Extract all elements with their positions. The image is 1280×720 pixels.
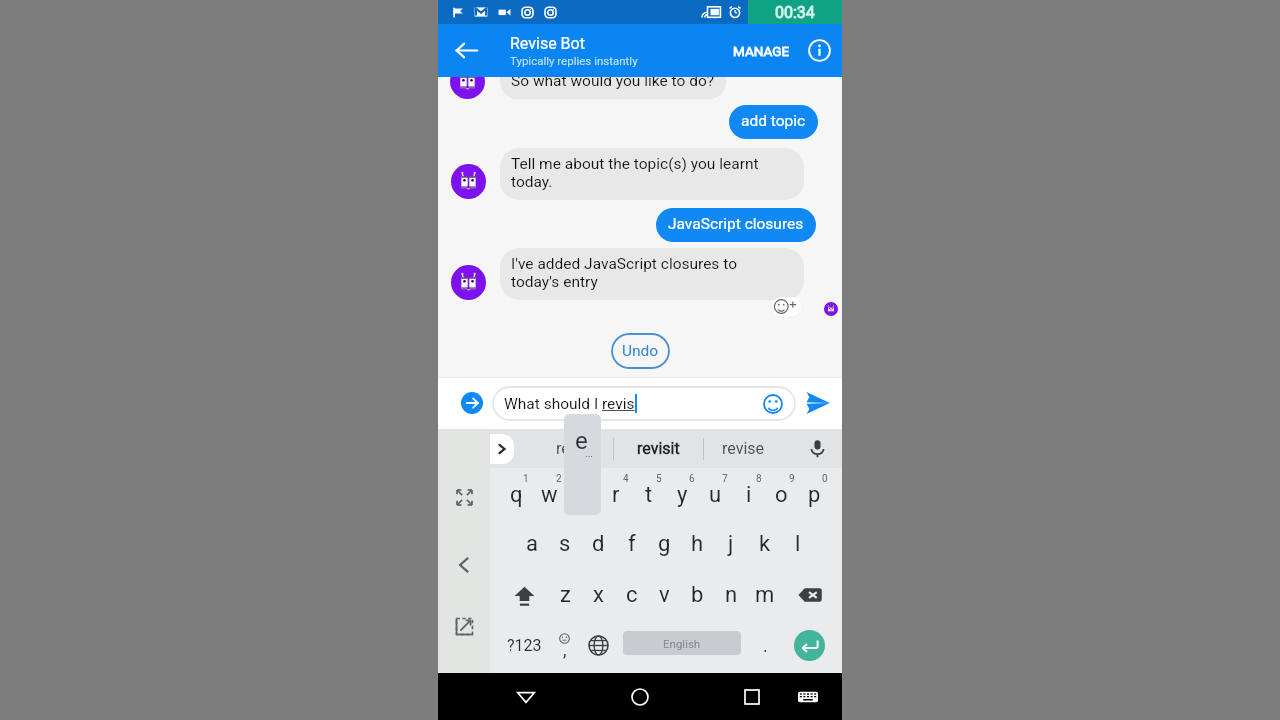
button[interactable]: Open in new window [449,611,479,641]
staticText: s [559,531,571,557]
button[interactable]: i [732,470,765,520]
button[interactable]: revise [707,429,779,468]
button[interactable]: re [527,429,599,468]
button[interactable]: w [533,470,566,520]
button[interactable]: English [623,631,741,655]
button[interactable]: t [632,470,665,520]
staticText: 1 [523,473,529,485]
button[interactable]: More suggestions [490,434,514,464]
staticText: 7 [722,473,728,485]
staticText: n [725,582,738,608]
button[interactable]: Change language [582,620,615,670]
staticText: re [556,439,570,458]
button[interactable]: y [666,470,699,520]
button[interactable]: s [548,519,581,569]
staticText: v [659,582,670,608]
staticText: 6 [689,473,695,485]
button[interactable]: l [781,519,814,569]
staticText: q [510,482,523,508]
button[interactable]: q [500,470,533,520]
button[interactable]: Back [504,675,548,719]
button[interactable]: Expand keyboard [449,482,479,512]
button[interactable]: g [648,519,681,569]
button[interactable]: JavaScript closures [656,208,816,242]
button[interactable]: z [549,570,582,620]
staticText: Tell me about the topic(s) you learnt to… [511,155,759,191]
button[interactable]: Open actions [457,388,487,418]
button[interactable]: Shift [501,570,547,620]
staticText: English [663,637,701,650]
staticText: ... [585,448,593,460]
button[interactable]: Undo [611,333,670,369]
staticText: u [709,482,722,508]
staticText: j [728,531,734,557]
button[interactable]: k [748,519,781,569]
button[interactable]: Switch keyboard [786,675,830,719]
button[interactable]: b [681,570,714,620]
staticText: Typically replies instantly [510,54,638,67]
button[interactable]: Key preview e [564,414,601,515]
staticText: y [677,482,688,508]
button[interactable]: e [566,470,599,520]
staticText: 0 [822,473,828,485]
staticText: h [691,531,704,557]
staticText: revise [722,439,765,458]
button[interactable]: x [582,570,615,620]
button[interactable]: add topic [729,105,818,139]
staticText: 00:34 [775,3,815,22]
button[interactable]: Backspace [787,570,833,620]
staticText: l [795,531,801,557]
staticText: e [575,427,588,455]
staticText: g [658,531,671,557]
staticText: JavaScript closures [668,215,804,233]
button[interactable]: What should I [492,386,796,421]
button[interactable]: Add reaction [772,297,801,316]
button[interactable]: Back [438,24,494,77]
button[interactable]: MANAGE [727,24,796,77]
button[interactable]: Tell me about the topic(s) you learnt to… [500,148,804,200]
button[interactable]: . [750,620,780,670]
button[interactable]: o [765,470,798,520]
button[interactable]: a [515,519,548,569]
button[interactable]: Previous [449,550,479,580]
button[interactable]: Recent apps [730,675,774,719]
staticText: add topic [741,112,806,130]
button[interactable]: ?123 [501,620,547,670]
staticText: d [592,531,605,557]
button[interactable]: Emoji [548,620,581,670]
button[interactable]: Conversation info [796,24,842,77]
button[interactable]: f [615,519,648,569]
staticText: z [560,582,571,608]
button[interactable]: d [582,519,615,569]
button[interactable]: revisit [622,429,694,468]
staticText: a [526,531,538,557]
button[interactable]: Revise Bot [510,24,743,77]
button[interactable]: r [599,470,632,520]
button[interactable]: n [715,570,748,620]
staticText: i [746,482,752,508]
staticText: m [755,582,775,608]
button[interactable]: h [681,519,714,569]
button[interactable]: p [798,470,831,520]
button[interactable]: So what would you like to do? [500,65,726,99]
button[interactable]: m [748,570,781,620]
button[interactable]: c [615,570,648,620]
button[interactable]: j [714,519,747,569]
button[interactable]: u [699,470,732,520]
button[interactable]: Send [800,385,836,421]
button[interactable]: Home [618,675,662,719]
staticText: r [612,482,620,508]
button[interactable]: Enter [794,630,825,661]
button[interactable]: v [648,570,681,620]
button[interactable]: I've added JavaScript closures to today'… [500,248,804,300]
staticText: x [593,582,604,608]
staticText: c [626,582,638,608]
staticText: w [541,482,558,508]
staticText: 8 [756,473,762,485]
staticText: I've added JavaScript closures to today'… [511,255,737,291]
staticText: ?123 [507,636,542,655]
staticText: 9 [789,473,795,485]
button[interactable]: Voice input [800,429,834,468]
